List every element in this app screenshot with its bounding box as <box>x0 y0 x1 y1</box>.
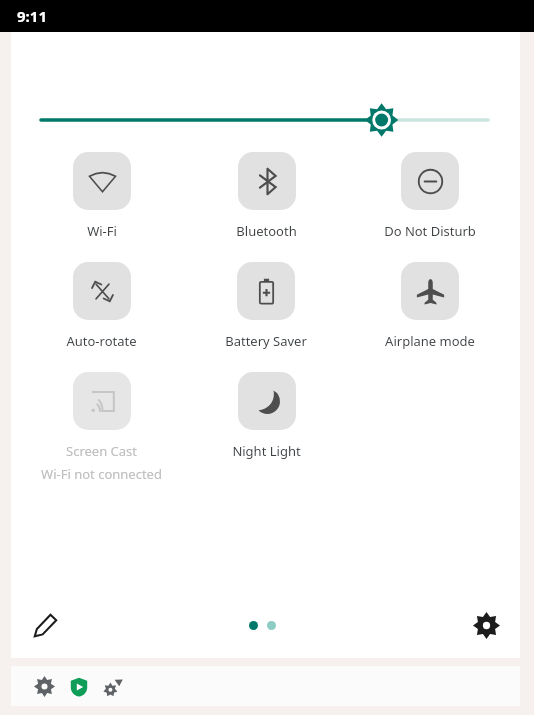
button[interactable]: Night Light <box>230 372 303 460</box>
staticText: Bluetooth <box>236 222 297 240</box>
button[interactable]: Auto-rotate <box>64 262 139 350</box>
button[interactable]: Battery Saver <box>223 262 309 350</box>
button[interactable]: Settings <box>462 601 510 649</box>
staticText: Screen Cast <box>66 442 137 460</box>
staticText: 9:11 <box>17 6 47 26</box>
button[interactable]: Brightness <box>11 32 520 152</box>
staticText: Airplane mode <box>385 332 475 350</box>
staticText: Battery Saver <box>225 332 307 350</box>
staticText: Night Light <box>232 442 301 460</box>
staticText: Do Not Disturb <box>384 222 476 240</box>
staticText: Wi-Fi not connected <box>41 465 162 483</box>
button[interactable]: Edit tiles <box>21 601 69 649</box>
button[interactable]: Network settings <box>103 677 123 697</box>
button[interactable]: Wi-Fi <box>71 152 133 240</box>
staticText: Auto-rotate <box>66 332 137 350</box>
button[interactable]: Airplane mode <box>383 262 477 350</box>
button[interactable]: Do Not Disturb <box>382 152 478 240</box>
button[interactable]: System settings <box>34 676 55 697</box>
staticText: Wi-Fi <box>87 222 117 240</box>
button[interactable]: Bluetooth <box>234 152 299 240</box>
button[interactable]: Play Protect <box>69 677 89 697</box>
button[interactable]: Screen Cast <box>39 372 164 483</box>
